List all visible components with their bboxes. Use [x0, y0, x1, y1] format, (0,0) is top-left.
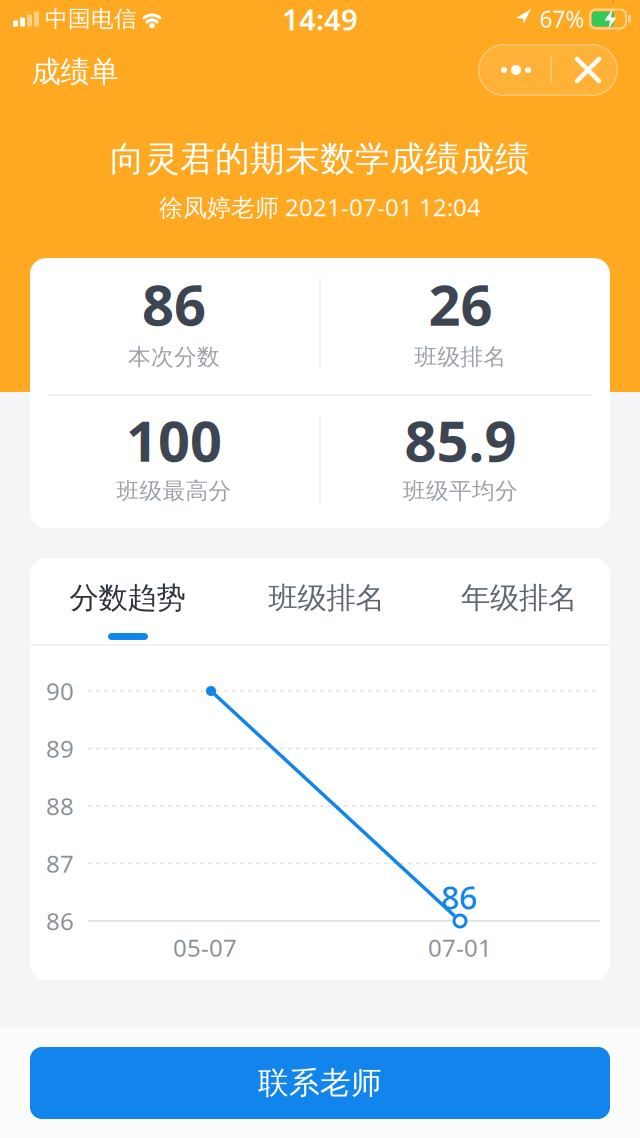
- staticText: 87: [46, 848, 74, 879]
- staticText: 年级排名: [461, 580, 577, 616]
- staticText: 徐凤婷老师 2021-07-01 12:04: [159, 191, 481, 223]
- staticText: 向灵君的期末数学成绩成绩: [110, 138, 530, 180]
- staticText: 中国电信: [45, 5, 137, 33]
- staticText: 班级平均分: [403, 477, 518, 505]
- button[interactable]: 班级排名: [268, 580, 384, 616]
- staticText: 90: [46, 675, 74, 707]
- staticText: 86: [46, 905, 74, 937]
- staticText: 班级排名: [414, 343, 506, 371]
- staticText: 05-07: [173, 932, 237, 963]
- staticText: 26: [428, 267, 492, 341]
- staticText: 86: [142, 267, 206, 341]
- staticText: 85.9: [404, 403, 516, 477]
- staticText: 班级排名: [268, 580, 384, 616]
- staticText: 分数趋势: [69, 580, 185, 616]
- staticText: 07-01: [428, 932, 492, 963]
- staticText: 88: [46, 790, 74, 822]
- button[interactable]: 分数趋势: [69, 580, 185, 616]
- staticText: 86: [441, 876, 477, 918]
- staticText: 14:49: [282, 0, 358, 38]
- button[interactable]: 更多与关闭: [478, 44, 618, 96]
- staticText: 100: [126, 403, 222, 477]
- staticText: 89: [46, 733, 74, 764]
- staticText: 67%: [539, 4, 584, 34]
- staticText: 联系老师: [258, 1064, 382, 1102]
- button[interactable]: 年级排名: [461, 580, 577, 616]
- staticText: 班级最高分: [116, 477, 231, 505]
- button[interactable]: 联系老师: [30, 1047, 610, 1119]
- staticText: 成绩单: [31, 54, 118, 90]
- staticText: 本次分数: [128, 343, 220, 371]
